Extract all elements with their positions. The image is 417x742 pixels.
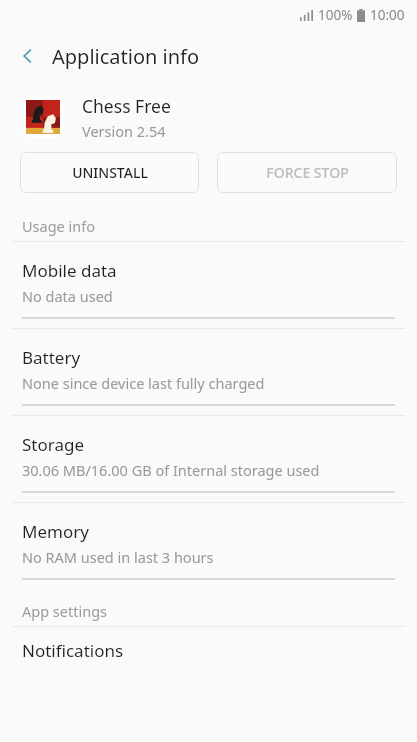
staticText: Mobile data xyxy=(22,259,117,282)
staticText: Notifications xyxy=(22,639,124,662)
staticText: None since device last fully charged xyxy=(22,373,265,393)
staticText: No RAM used in last 3 hours xyxy=(22,547,214,567)
staticText: 30.06 MB/16.00 GB of Internal storage us… xyxy=(22,460,320,480)
staticText: Version 2.54 xyxy=(82,121,166,141)
staticText: Chess Free xyxy=(82,94,171,118)
button[interactable]: Mobile data xyxy=(0,242,417,329)
button[interactable]: Back xyxy=(10,38,46,74)
staticText: UNINSTALL xyxy=(72,163,148,182)
button[interactable]: Notifications xyxy=(0,627,417,673)
staticText: Application info xyxy=(52,43,200,70)
button[interactable]: FORCE STOP xyxy=(217,152,397,193)
staticText: No data used xyxy=(22,286,113,306)
staticText: FORCE STOP xyxy=(266,163,349,182)
button[interactable]: Storage xyxy=(0,416,417,503)
button[interactable]: Memory xyxy=(0,503,417,596)
button[interactable]: Battery xyxy=(0,329,417,416)
staticText: 100% xyxy=(318,6,353,24)
button[interactable]: UNINSTALL xyxy=(20,152,199,193)
staticText: Battery xyxy=(22,346,81,369)
staticText: Memory xyxy=(22,520,89,543)
staticText: App settings xyxy=(22,601,108,621)
staticText: Storage xyxy=(22,433,85,456)
staticText: Usage info xyxy=(22,216,96,236)
staticText: 10:00 xyxy=(370,6,405,24)
